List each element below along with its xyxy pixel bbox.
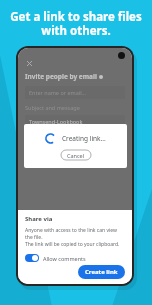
button[interactable]: Close <box>25 59 33 67</box>
staticText: Enter name or email... <box>29 89 87 96</box>
staticText: Allow comments <box>43 255 86 262</box>
staticText: Creating link... <box>62 134 106 143</box>
staticText: Subject and message <box>25 104 80 111</box>
button[interactable]: Enter a personal message (optional) <box>25 131 125 144</box>
button[interactable]: Allow comments <box>25 254 86 262</box>
staticText: Create link <box>85 268 118 276</box>
staticText: Invite people by email <box>25 72 97 81</box>
staticText: Share via <box>25 215 53 223</box>
button[interactable]: Enter name or email... <box>25 86 125 99</box>
button[interactable]: Create link <box>78 265 125 279</box>
button[interactable]: Townsend-Lookbook <box>25 115 125 128</box>
staticText: Anyone with access to the link can view … <box>25 227 125 248</box>
staticText: Cancel <box>67 152 85 159</box>
staticText: Enter a personal message (optional) <box>29 134 122 141</box>
button[interactable]: Cancel <box>59 150 93 160</box>
staticText: Townsend-Lookbook <box>29 118 83 125</box>
staticText: Get a link to share files with others. <box>0 9 152 38</box>
